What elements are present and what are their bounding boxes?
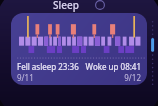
button[interactable]: Fell asleep 23:36 — [11, 13, 147, 85]
staticText: 9/11 — [17, 72, 34, 83]
staticText: Woke up 08:41 — [85, 61, 141, 72]
staticText: Sleep — [53, 0, 79, 12]
button[interactable]: More options — [95, 0, 105, 10]
staticText: Fell asleep 23:36 — [17, 61, 79, 72]
staticText: 9/12 — [124, 72, 141, 83]
button[interactable]: Sleep — [47, 0, 111, 13]
